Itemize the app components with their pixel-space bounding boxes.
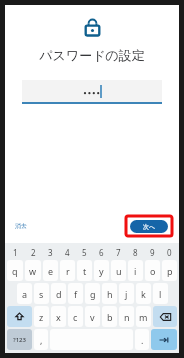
staticText: q — [12, 265, 18, 277]
staticText: i — [134, 265, 137, 277]
button[interactable]: a — [17, 283, 32, 304]
other: Lock — [84, 18, 101, 37]
button[interactable]: 3 — [42, 245, 59, 259]
staticText: 0 — [167, 247, 172, 258]
button[interactable]: x — [51, 306, 66, 327]
button[interactable]: 9 — [144, 245, 161, 259]
staticText: t — [83, 265, 87, 277]
staticText: z — [39, 311, 44, 323]
staticText: 消去 — [15, 222, 27, 230]
staticText: , — [40, 334, 43, 346]
staticText: 7 — [116, 247, 121, 258]
staticText: a — [22, 288, 28, 300]
staticText: 2 — [31, 247, 36, 258]
button[interactable]: Backspace — [153, 306, 177, 327]
staticText: r — [66, 265, 70, 277]
button[interactable] — [22, 80, 162, 102]
button[interactable]: z — [34, 306, 49, 327]
button[interactable]: l — [153, 283, 168, 304]
button[interactable]: m — [136, 306, 151, 327]
staticText: b — [107, 311, 113, 323]
staticText: g — [90, 288, 96, 300]
staticText: h — [107, 288, 113, 300]
button[interactable]: p — [162, 260, 177, 281]
button[interactable]: 2 — [24, 245, 42, 259]
button[interactable]: i — [128, 260, 143, 281]
button[interactable]: b — [102, 306, 117, 327]
staticText: s — [39, 288, 44, 300]
staticText: 6 — [99, 247, 104, 258]
button[interactable]: t — [77, 260, 92, 281]
staticText: 8 — [133, 247, 138, 258]
staticText: f — [74, 288, 78, 300]
staticText: 次へ — [143, 223, 156, 231]
button[interactable]: 1 — [6, 245, 24, 259]
button[interactable]: 6 — [93, 245, 110, 259]
staticText: p — [167, 265, 173, 277]
button[interactable]: s — [34, 283, 49, 304]
button[interactable]: r — [60, 260, 75, 281]
staticText: c — [73, 311, 78, 323]
button[interactable]: 消去 — [13, 220, 29, 232]
staticText: n — [124, 311, 130, 323]
button[interactable]: j — [119, 283, 134, 304]
button[interactable]: c — [68, 306, 83, 327]
button[interactable]: 0 — [161, 245, 178, 259]
button[interactable]: ?123 — [7, 329, 32, 350]
staticText: 4 — [65, 247, 70, 258]
staticText: j — [125, 288, 128, 300]
button[interactable]: g — [85, 283, 100, 304]
button[interactable]: k — [136, 283, 151, 304]
staticText: o — [150, 265, 156, 277]
staticText: . — [141, 334, 144, 346]
button[interactable]: . — [135, 329, 149, 350]
staticText: d — [56, 288, 62, 300]
staticText: l — [159, 288, 162, 300]
staticText: パスワードの設定 — [39, 47, 145, 63]
staticText: m — [139, 311, 148, 323]
button[interactable]: 5 — [76, 245, 93, 259]
staticText: x — [56, 311, 61, 323]
button[interactable]: , — [34, 329, 48, 350]
staticText: w — [29, 265, 37, 277]
staticText: 3 — [48, 247, 53, 258]
button[interactable]: Shift — [7, 306, 32, 327]
button[interactable]: o — [145, 260, 160, 281]
button[interactable]: Next field — [151, 329, 177, 350]
staticText: ?123 — [13, 336, 26, 344]
staticText: v — [90, 311, 95, 323]
button[interactable]: 次へ — [130, 220, 168, 233]
button[interactable]: n — [119, 306, 134, 327]
staticText: e — [48, 265, 54, 277]
staticText: y — [99, 265, 104, 277]
button[interactable]: d — [51, 283, 66, 304]
staticText: 5 — [82, 247, 87, 258]
button[interactable]: u — [111, 260, 126, 281]
button[interactable]: v — [85, 306, 100, 327]
button[interactable]: h — [102, 283, 117, 304]
staticText: 9 — [150, 247, 155, 258]
button[interactable]: w — [25, 260, 41, 281]
button[interactable]: y — [94, 260, 109, 281]
button[interactable]: q — [7, 260, 23, 281]
button[interactable]: 8 — [127, 245, 144, 259]
staticText: k — [141, 288, 146, 300]
staticText: 1 — [13, 247, 18, 258]
button[interactable]: e — [43, 260, 58, 281]
button[interactable]: 4 — [59, 245, 76, 259]
button[interactable]: f — [68, 283, 83, 304]
staticText: u — [116, 265, 122, 277]
button[interactable]: 7 — [110, 245, 127, 259]
